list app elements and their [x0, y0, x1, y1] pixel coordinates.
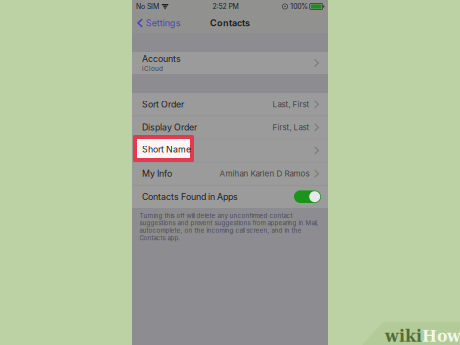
staticText: Amihan Karlen D Ramos [219, 169, 309, 178]
staticText: 2:52 PM [212, 2, 238, 11]
staticText: Contacts [210, 17, 250, 28]
staticText: wiki [385, 327, 422, 345]
staticText: Sort Order [142, 99, 184, 110]
staticText: Short Name [142, 144, 191, 155]
button[interactable]: Short Name [132, 139, 328, 162]
staticText: iCloud [142, 65, 163, 72]
button[interactable]: My Info [132, 162, 328, 185]
staticText: First, Last [272, 123, 309, 132]
staticText: No SIM [136, 2, 159, 11]
staticText: Accounts [142, 54, 181, 64]
staticText: Settings [146, 17, 181, 28]
staticText: Short Name [142, 145, 191, 156]
staticText: How [422, 327, 460, 345]
staticText: Last, First [272, 99, 309, 109]
button[interactable]: Accounts [132, 52, 328, 74]
staticText: Turning this off will delete any unconfi… [139, 212, 318, 242]
staticText: Display Order [142, 122, 197, 133]
staticText: My Info [142, 168, 172, 179]
button[interactable]: Sort Order [132, 93, 328, 116]
staticText: 100% [290, 2, 308, 11]
button[interactable]: Contacts Found in Apps [132, 185, 328, 208]
staticText: Contacts Found in Apps [142, 191, 238, 202]
button[interactable]: Settings [132, 14, 181, 31]
button[interactable]: Display Order [132, 116, 328, 139]
